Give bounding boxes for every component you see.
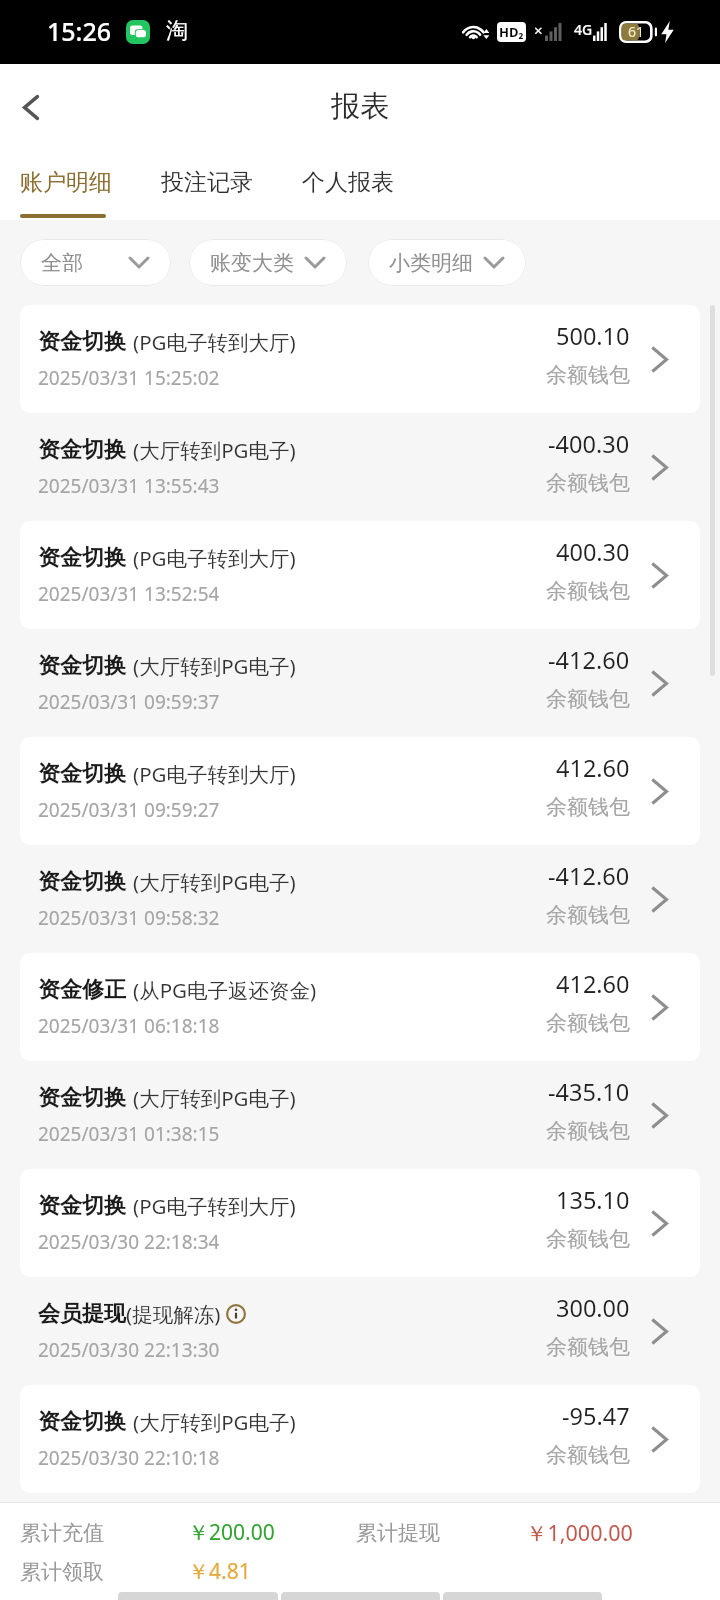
staticText: 500.10 <box>556 320 630 352</box>
button[interactable]: 全部 <box>20 239 171 286</box>
staticText: 资金切换 <box>38 328 126 356</box>
staticText: (提现解冻) <box>126 1300 221 1328</box>
button[interactable]: 投注记录 <box>161 150 253 220</box>
staticText: 资金切换 <box>38 544 126 572</box>
staticText: 累计充值 <box>20 1520 104 1546</box>
button[interactable]: 会员提现 <box>20 1277 700 1385</box>
staticText: 2025/03/30 22:18:34 <box>38 1229 220 1255</box>
staticText: 412.60 <box>556 968 630 1000</box>
staticText: ￥4.81 <box>188 1557 251 1586</box>
staticText: 累计领取 <box>20 1559 104 1585</box>
button[interactable]: 账户明细 <box>20 150 112 220</box>
staticText: 淘 <box>166 17 188 45</box>
staticText: (大厅转到PG电子) <box>133 868 296 896</box>
staticText: 会员提现 <box>38 1300 126 1328</box>
staticText: 2025/03/31 06:18:18 <box>38 1013 220 1039</box>
staticText: 累计提现 <box>356 1520 440 1546</box>
staticText: 小类明细 <box>389 250 473 276</box>
button[interactable]: 个人报表 <box>302 150 394 220</box>
staticText: 资金切换 <box>38 1192 126 1220</box>
staticText: 400.30 <box>556 536 630 568</box>
staticText: × <box>534 20 543 40</box>
staticText: 资金修正 <box>38 976 126 1004</box>
staticText: 余额钱包 <box>546 1226 630 1252</box>
staticText: 余额钱包 <box>546 1442 630 1468</box>
staticText: 135.10 <box>556 1184 630 1216</box>
button[interactable]: Back <box>1 77 61 137</box>
staticText: 资金切换 <box>38 1408 126 1436</box>
staticText: 61 <box>628 22 645 41</box>
staticText: 412.60 <box>556 752 630 784</box>
staticText: 账户明细 <box>20 168 112 197</box>
staticText: 余额钱包 <box>546 794 630 820</box>
staticText: (大厅转到PG电子) <box>133 436 296 464</box>
staticText: 余额钱包 <box>546 686 630 712</box>
button[interactable]: 账变大类 <box>189 239 347 286</box>
staticText: (PG电子转到大厅) <box>133 544 296 572</box>
staticText: 余额钱包 <box>546 578 630 604</box>
staticText: -435.10 <box>548 1076 630 1108</box>
staticText: 个人报表 <box>302 168 394 197</box>
staticText: -95.47 <box>562 1400 630 1432</box>
button[interactable]: 资金切换 <box>20 1061 700 1169</box>
staticText: 资金切换 <box>38 760 126 788</box>
staticText: 全部 <box>41 250 83 276</box>
button[interactable]: 小类明细 <box>368 239 526 286</box>
staticText: 余额钱包 <box>546 470 630 496</box>
staticText: 2025/03/31 15:25:02 <box>38 365 220 391</box>
staticText: 4G <box>574 20 593 39</box>
button[interactable]: 资金切换 <box>20 1169 700 1277</box>
staticText: HD₂ <box>499 23 524 41</box>
button[interactable]: 资金切换 <box>20 629 700 737</box>
staticText: 投注记录 <box>161 168 253 197</box>
button[interactable]: 资金切换 <box>20 521 700 629</box>
staticText: 2025/03/31 09:59:27 <box>38 797 220 823</box>
staticText: 15:26 <box>47 14 112 48</box>
staticText: ￥200.00 <box>188 1518 275 1547</box>
button[interactable]: 资金切换 <box>20 845 700 953</box>
staticText: 资金切换 <box>38 1084 126 1112</box>
staticText: 2025/03/31 13:55:43 <box>38 473 220 499</box>
button[interactable]: 资金切换 <box>20 413 700 521</box>
staticText: 报表 <box>331 88 389 125</box>
staticText: (大厅转到PG电子) <box>133 1084 296 1112</box>
staticText: -412.60 <box>548 644 630 676</box>
button[interactable]: 资金切换 <box>20 305 700 413</box>
staticText: 余额钱包 <box>546 1010 630 1036</box>
staticText: 余额钱包 <box>546 902 630 928</box>
staticText: 300.00 <box>556 1292 630 1324</box>
staticText: 余额钱包 <box>546 1118 630 1144</box>
staticText: 资金切换 <box>38 436 126 464</box>
staticText: -412.60 <box>548 860 630 892</box>
staticText: 余额钱包 <box>546 1334 630 1360</box>
staticText: ￥1,000.00 <box>526 1518 633 1547</box>
staticText: 2025/03/31 01:38:15 <box>38 1121 220 1147</box>
staticText: 2025/03/31 09:58:32 <box>38 905 220 931</box>
button[interactable]: 资金切换 <box>20 1385 700 1493</box>
staticText: (大厅转到PG电子) <box>133 1408 296 1436</box>
staticText: (PG电子转到大厅) <box>133 760 296 788</box>
staticText: 账变大类 <box>210 250 294 276</box>
staticText: (从PG电子返还资金) <box>133 976 317 1004</box>
staticText: 2025/03/31 13:52:54 <box>38 581 220 607</box>
staticText: -400.30 <box>548 428 630 460</box>
button[interactable]: 资金切换 <box>20 737 700 845</box>
staticText: 余额钱包 <box>546 362 630 388</box>
staticText: (大厅转到PG电子) <box>133 652 296 680</box>
button[interactable]: 资金修正 <box>20 953 700 1061</box>
staticText: 资金切换 <box>38 868 126 896</box>
staticText: 2025/03/30 22:13:30 <box>38 1337 220 1363</box>
staticText: (PG电子转到大厅) <box>133 1192 296 1220</box>
staticText: 资金切换 <box>38 652 126 680</box>
staticText: 2025/03/30 22:10:18 <box>38 1445 220 1471</box>
staticText: 2025/03/31 09:59:37 <box>38 689 220 715</box>
staticText: (PG电子转到大厅) <box>133 328 296 356</box>
